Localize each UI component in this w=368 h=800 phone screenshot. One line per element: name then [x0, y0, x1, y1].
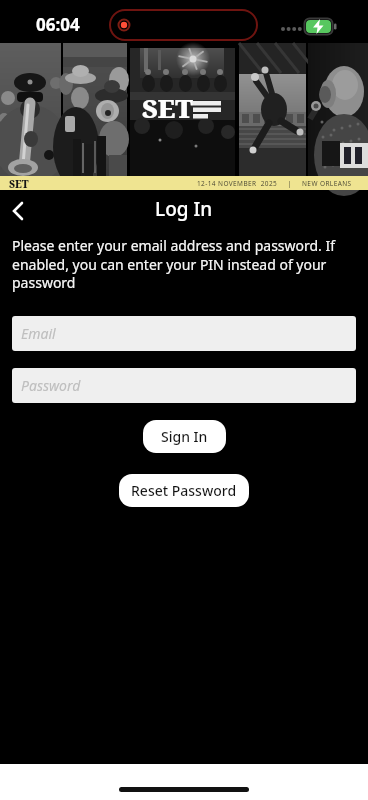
staticText: Email — [21, 324, 56, 343]
staticText: Please enter your email address and pass… — [12, 236, 336, 292]
staticText: Password — [21, 376, 81, 395]
staticText: 06:04 — [36, 13, 80, 36]
button[interactable] — [4, 192, 40, 228]
staticText: Log In — [155, 196, 213, 222]
staticText: 12-14 NOVEMBER 2025 | NEW ORLEANS — [197, 179, 352, 188]
button[interactable]: Password — [12, 368, 356, 403]
button[interactable]: Sign In — [143, 420, 226, 453]
staticText: SET — [9, 177, 29, 191]
staticText: SET — [142, 90, 194, 125]
button[interactable]: Reset Password — [119, 474, 249, 507]
button[interactable]: Email — [12, 316, 356, 351]
staticText: Reset Password — [131, 481, 237, 500]
staticText: Sign In — [161, 427, 208, 446]
